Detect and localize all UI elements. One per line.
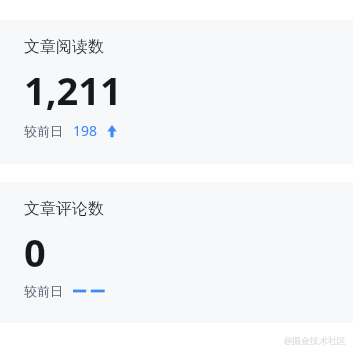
- staticText: 较前日: [24, 283, 63, 299]
- staticText: 198: [73, 121, 98, 140]
- staticText: 文章阅读数: [24, 37, 104, 57]
- button[interactable]: 文章评论数: [0, 182, 353, 323]
- staticText: @掘金技术社区: [284, 334, 347, 346]
- button[interactable]: 文章阅读数: [0, 20, 353, 164]
- staticText: 1,211: [24, 64, 122, 116]
- other: Increase: [105, 124, 119, 138]
- staticText: 文章评论数: [24, 199, 104, 219]
- staticText: 较前日: [24, 123, 63, 139]
- staticText: 0: [24, 226, 46, 278]
- other: No change: [73, 285, 106, 297]
